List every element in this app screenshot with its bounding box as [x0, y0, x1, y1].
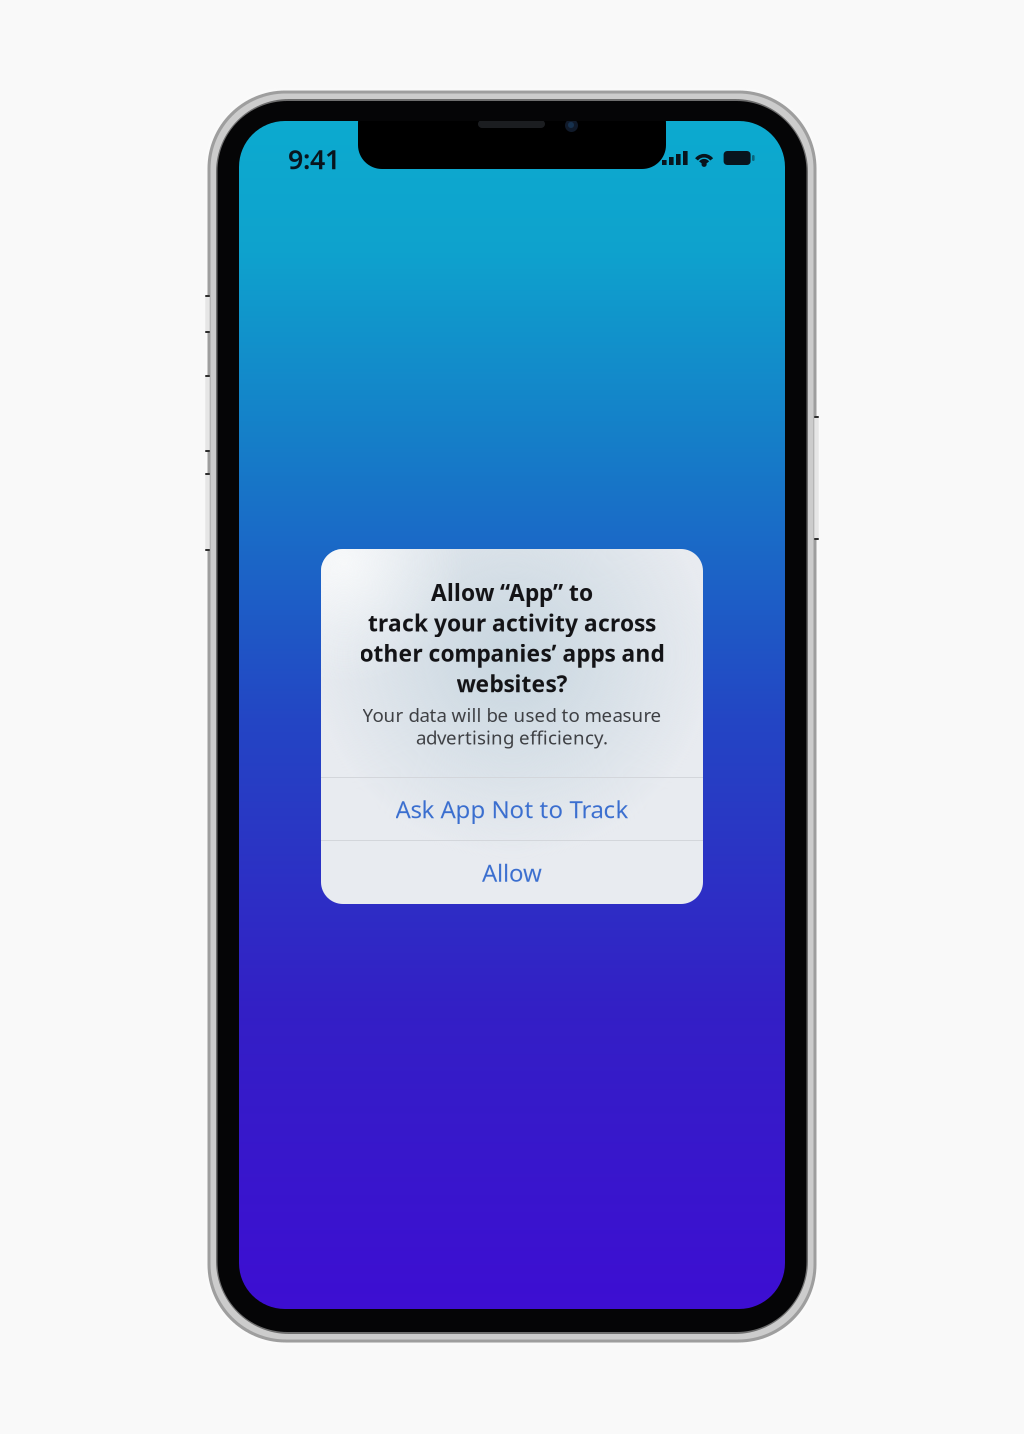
staticText: track your activity across — [368, 607, 656, 638]
staticText: advertising efficiency. — [416, 725, 608, 750]
staticText: Allow “App” to — [431, 577, 593, 607]
staticText: Ask App Not to Track — [395, 793, 628, 825]
staticText: Your data will be used to measure — [362, 702, 661, 727]
button[interactable]: Ask App Not to Track — [321, 778, 703, 840]
staticText: other companies’ apps and — [359, 638, 664, 668]
staticText: websites? — [456, 668, 567, 698]
staticText: Allow — [482, 857, 542, 888]
button[interactable]: Allow — [321, 841, 703, 904]
staticText: 9:41 — [288, 141, 340, 177]
